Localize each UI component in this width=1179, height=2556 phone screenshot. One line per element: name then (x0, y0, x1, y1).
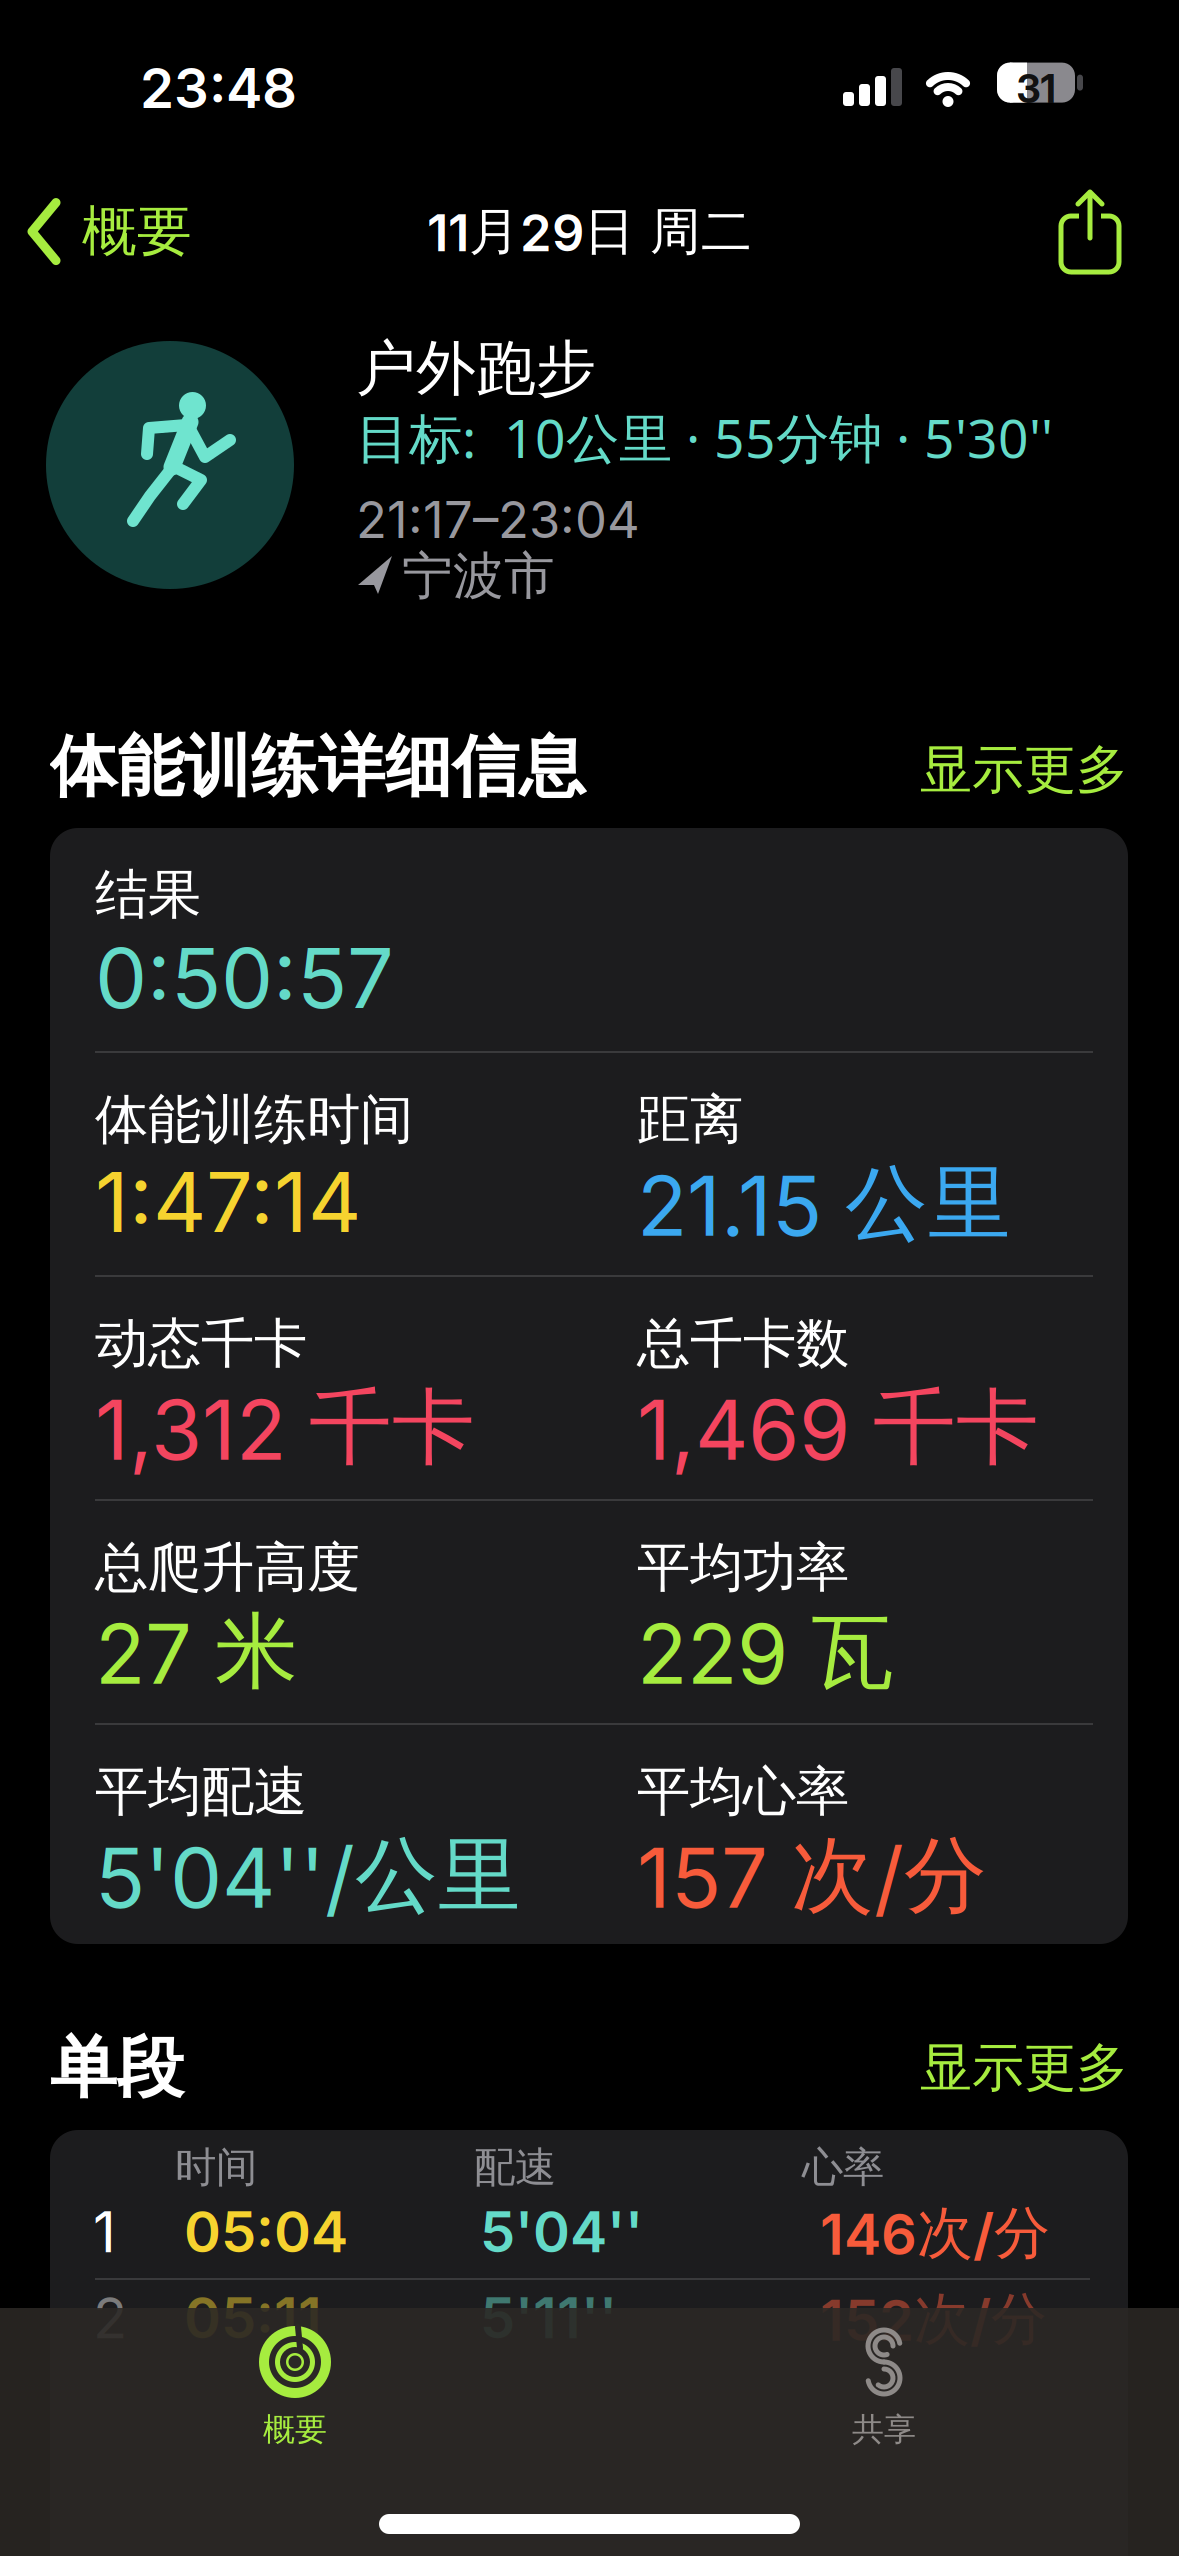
button[interactable]: 共享 (1061, 190, 1119, 272)
staticText: 共享 (852, 2410, 916, 2449)
staticText: 1,469 千卡 (637, 1376, 1039, 1480)
staticText: 157 次/分 (637, 1824, 987, 1928)
staticText: 05:04 (184, 2198, 348, 2266)
staticText: 31 (1016, 66, 1055, 112)
staticText: 平均心率 (637, 1759, 849, 1824)
staticText: 1,312 千卡 (95, 1376, 475, 1480)
staticText: 配速 (474, 2142, 556, 2193)
staticText: 5'04'' (480, 2198, 643, 2266)
staticText: 146次/分 (820, 2198, 1050, 2268)
staticText: 户外跑步 (356, 332, 596, 406)
button[interactable]: 概要 (145, 2326, 445, 2449)
staticText: 27 米 (95, 1600, 298, 1704)
staticText: 0:50:57 (95, 928, 394, 1028)
staticText: 229 瓦 (637, 1600, 894, 1704)
staticText: 体能训练详细信息 (50, 726, 586, 808)
staticText: 时间 (175, 2142, 257, 2193)
staticText: 动态千卡 (95, 1311, 307, 1376)
button[interactable]: 概要 (30, 198, 192, 265)
staticText: 概要 (263, 2410, 327, 2449)
staticText: 152次/分 (820, 2284, 1047, 2354)
staticText: 心率 (802, 2142, 884, 2193)
staticText: 显示更多 (920, 738, 1128, 802)
staticText: 体能训练时间 (95, 1087, 413, 1152)
staticText: 23:48 (140, 55, 297, 121)
staticText: 5'04''/公里 (95, 1824, 521, 1928)
staticText: 1:47:14 (95, 1152, 361, 1252)
staticText: 单段 (50, 2027, 184, 2109)
staticText: 05:11 (184, 2284, 322, 2352)
staticText: 总千卡数 (637, 1311, 849, 1376)
staticText: 5'11'' (480, 2284, 617, 2352)
staticText: 1 (93, 2198, 116, 2266)
staticText: 2 (93, 2284, 127, 2352)
staticText: 结果 (95, 862, 201, 927)
staticText: 概要 (82, 198, 192, 265)
staticText: 总爬升高度 (95, 1535, 360, 1600)
button[interactable]: 显示更多 (920, 738, 1128, 802)
staticText: 平均配速 (95, 1759, 307, 1824)
staticText: 距离 (637, 1087, 743, 1152)
staticText: 11月29日 周二 (427, 200, 752, 264)
staticText: 宁波市 (402, 545, 555, 607)
staticText: 21.15 公里 (637, 1152, 1011, 1256)
staticText: 目标: 10公里 · 55分钟 · 5'30'' (356, 402, 1053, 473)
button[interactable]: 共享 (734, 2326, 1034, 2449)
staticText: 平均功率 (637, 1535, 849, 1600)
staticText: 显示更多 (920, 2036, 1128, 2100)
button[interactable]: 显示更多 (920, 2036, 1128, 2100)
staticText: 21:17–23:04 (356, 489, 640, 550)
